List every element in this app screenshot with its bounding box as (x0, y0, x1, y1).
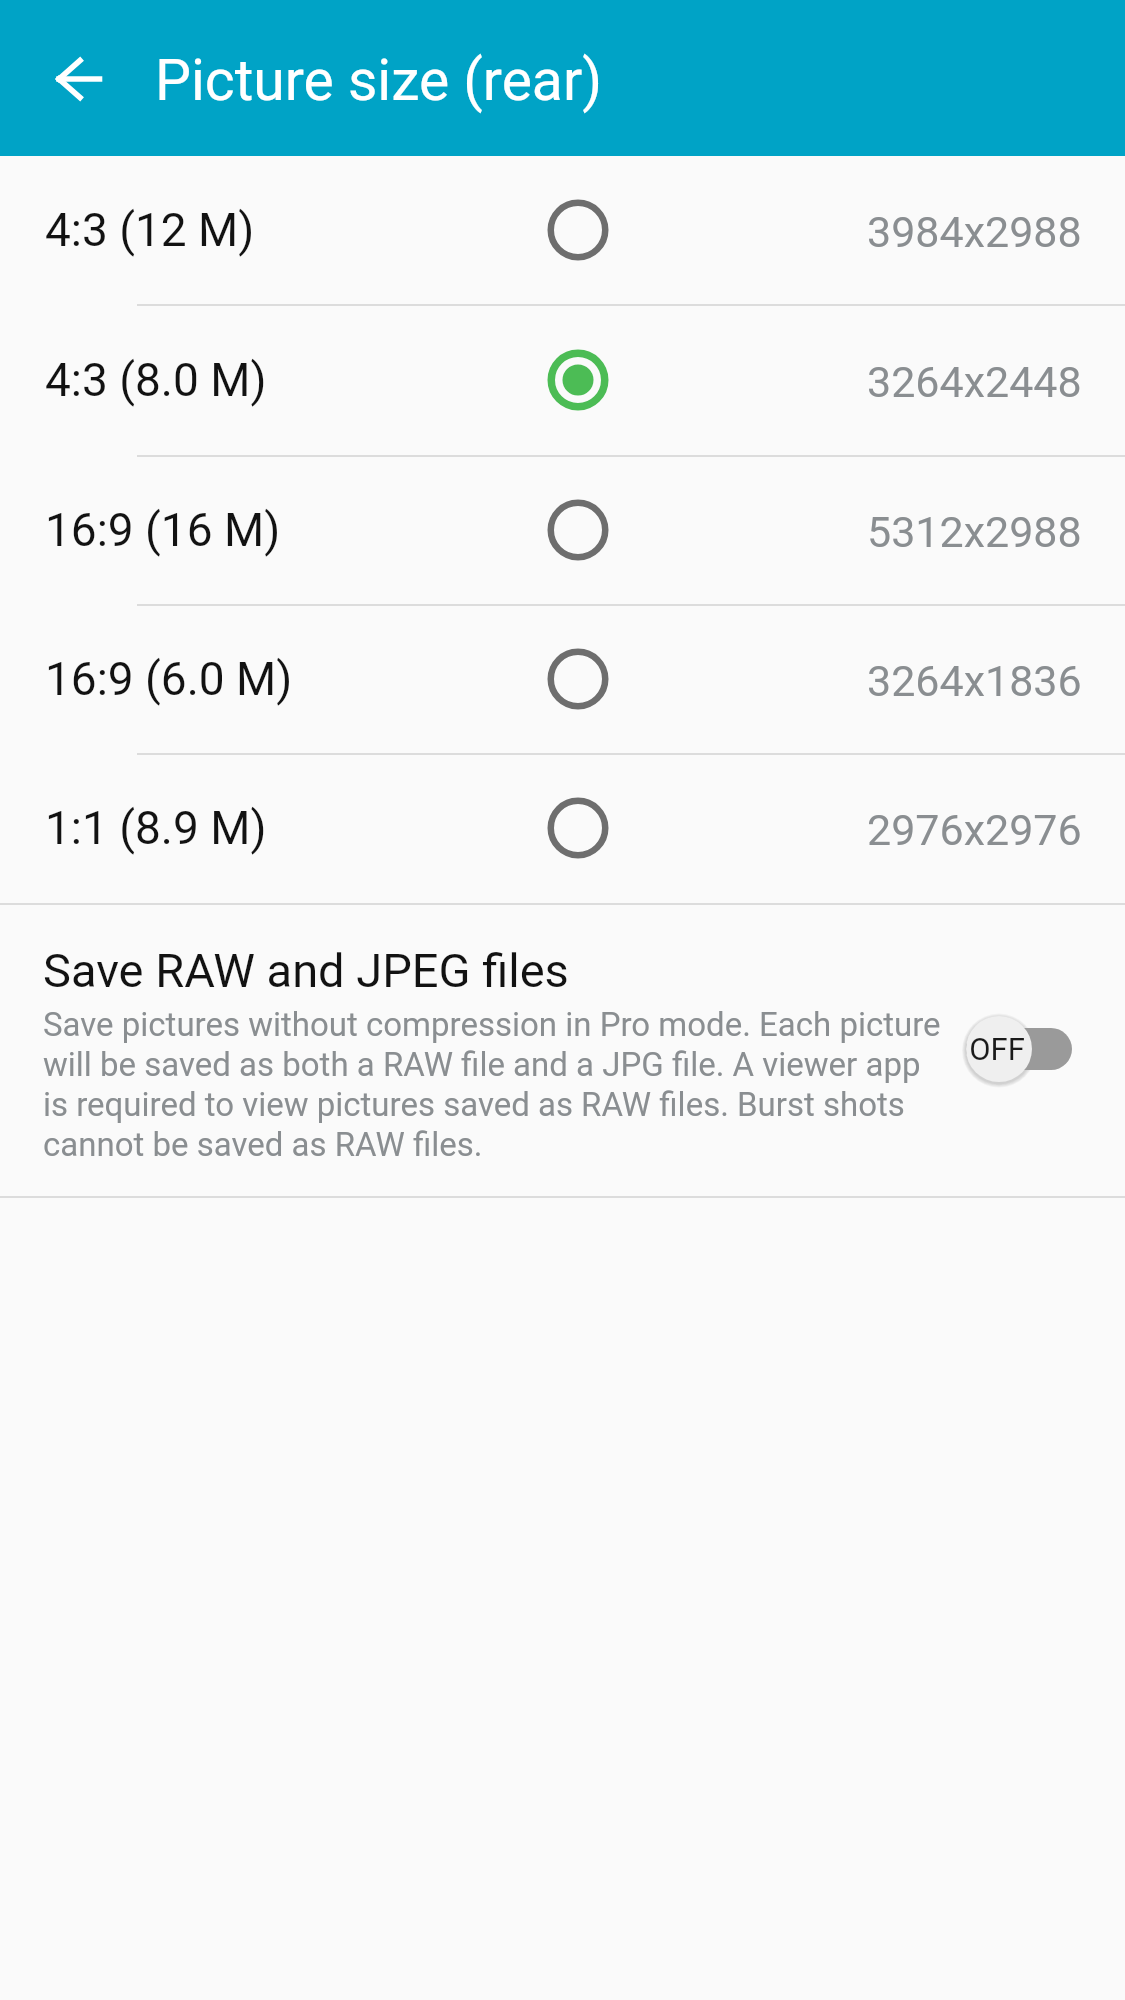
staticText: OFF (969, 1031, 1025, 1067)
staticText: Save RAW and JPEG files (43, 943, 569, 998)
button[interactable]: 1:1 (8.9 M) (0, 753, 1125, 903)
staticText: 2976x2976 (867, 805, 1082, 855)
staticText: Save pictures without compression in Pro… (43, 1005, 943, 1164)
staticText: 3264x1836 (867, 656, 1082, 706)
button[interactable]: 4:3 (8.0 M) (0, 304, 1125, 455)
staticText: 4:3 (8.0 M) (45, 353, 267, 407)
button[interactable]: 16:9 (16 M) (0, 455, 1125, 604)
staticText: 1:1 (8.9 M) (45, 801, 267, 855)
staticText: 16:9 (6.0 M) (45, 652, 293, 706)
button[interactable]: 16:9 (6.0 M) (0, 604, 1125, 753)
staticText: 4:3 (12 M) (45, 203, 255, 257)
staticText: Picture size (rear) (155, 47, 603, 114)
staticText: 16:9 (16 M) (45, 503, 281, 557)
staticText: 3984x2988 (867, 207, 1082, 257)
staticText: 5312x2988 (867, 507, 1082, 557)
staticText: 3264x2448 (867, 357, 1082, 407)
button[interactable]: 4:3 (12 M) (0, 156, 1125, 304)
button[interactable]: Navigate up (0, 0, 150, 156)
button[interactable]: Save RAW and JPEG files (0, 905, 1125, 1196)
